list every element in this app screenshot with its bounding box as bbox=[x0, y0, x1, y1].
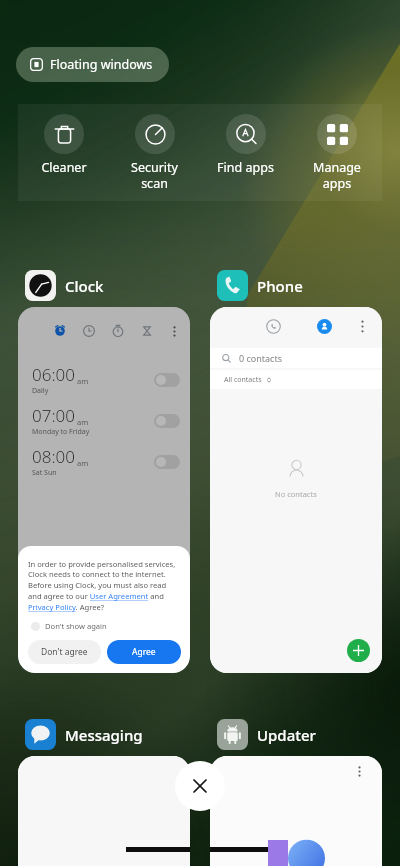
button[interactable]: Don't show again bbox=[28, 621, 107, 631]
staticText: Security scan bbox=[131, 159, 178, 191]
button[interactable]: Alarm bbox=[54, 325, 66, 337]
button[interactable]: Security scan bbox=[109, 114, 200, 191]
staticText: am bbox=[77, 417, 89, 427]
staticText: Updater bbox=[257, 725, 316, 745]
button[interactable]: All contacts bbox=[210, 370, 382, 389]
button[interactable]: Floating windows bbox=[16, 47, 169, 82]
button[interactable]: Toggle alarm bbox=[154, 455, 180, 469]
staticText: Manage apps bbox=[313, 159, 361, 191]
button[interactable]: 0 contacts bbox=[210, 307, 382, 673]
button[interactable]: More options bbox=[169, 326, 180, 337]
button[interactable]: Find apps bbox=[200, 114, 291, 176]
button[interactable]: Manage apps bbox=[291, 114, 382, 191]
button[interactable]: Alarm bbox=[18, 307, 190, 673]
button[interactable]: More options bbox=[210, 756, 382, 866]
staticText: Agree bbox=[132, 646, 156, 658]
button[interactable]: Agree bbox=[107, 640, 181, 664]
staticText: Daily bbox=[32, 386, 49, 396]
button[interactable]: Cleaner bbox=[18, 114, 109, 176]
staticText: Clock bbox=[65, 276, 104, 296]
staticText: Messaging bbox=[65, 725, 143, 745]
staticText: am bbox=[77, 458, 89, 468]
staticText: am bbox=[77, 376, 89, 386]
staticText: Cleaner bbox=[41, 159, 87, 176]
staticText: Find apps bbox=[217, 159, 274, 176]
staticText: 06:00 bbox=[32, 363, 75, 386]
button[interactable]: Stopwatch bbox=[112, 325, 124, 337]
button[interactable]: Timer bbox=[141, 325, 153, 337]
button[interactable]: Add contact bbox=[347, 639, 370, 662]
button[interactable]: Toggle alarm bbox=[154, 414, 180, 428]
staticText: Floating windows bbox=[50, 56, 153, 73]
button[interactable] bbox=[18, 756, 190, 866]
button[interactable]: Toggle alarm bbox=[154, 373, 180, 387]
staticText: All contacts bbox=[224, 375, 262, 385]
button[interactable]: More options bbox=[354, 766, 365, 777]
staticText: Don't show again bbox=[45, 621, 107, 631]
staticText: Don't agree bbox=[41, 646, 88, 658]
staticText: No contacts bbox=[275, 489, 317, 499]
button[interactable]: World clock bbox=[83, 325, 95, 337]
staticText: 08:00 bbox=[32, 445, 75, 468]
button[interactable]: 0 contacts bbox=[210, 348, 382, 368]
staticText: Monday to Friday bbox=[32, 427, 90, 437]
staticText: In order to provide personalised service… bbox=[28, 559, 181, 613]
button[interactable]: Don't agree bbox=[28, 640, 101, 664]
staticText: Phone bbox=[257, 276, 303, 296]
staticText: 0 contacts bbox=[239, 352, 282, 364]
button[interactable]: Close all bbox=[175, 761, 225, 811]
staticText: 07:00 bbox=[32, 404, 75, 427]
staticText: Sat Sun bbox=[32, 468, 57, 478]
